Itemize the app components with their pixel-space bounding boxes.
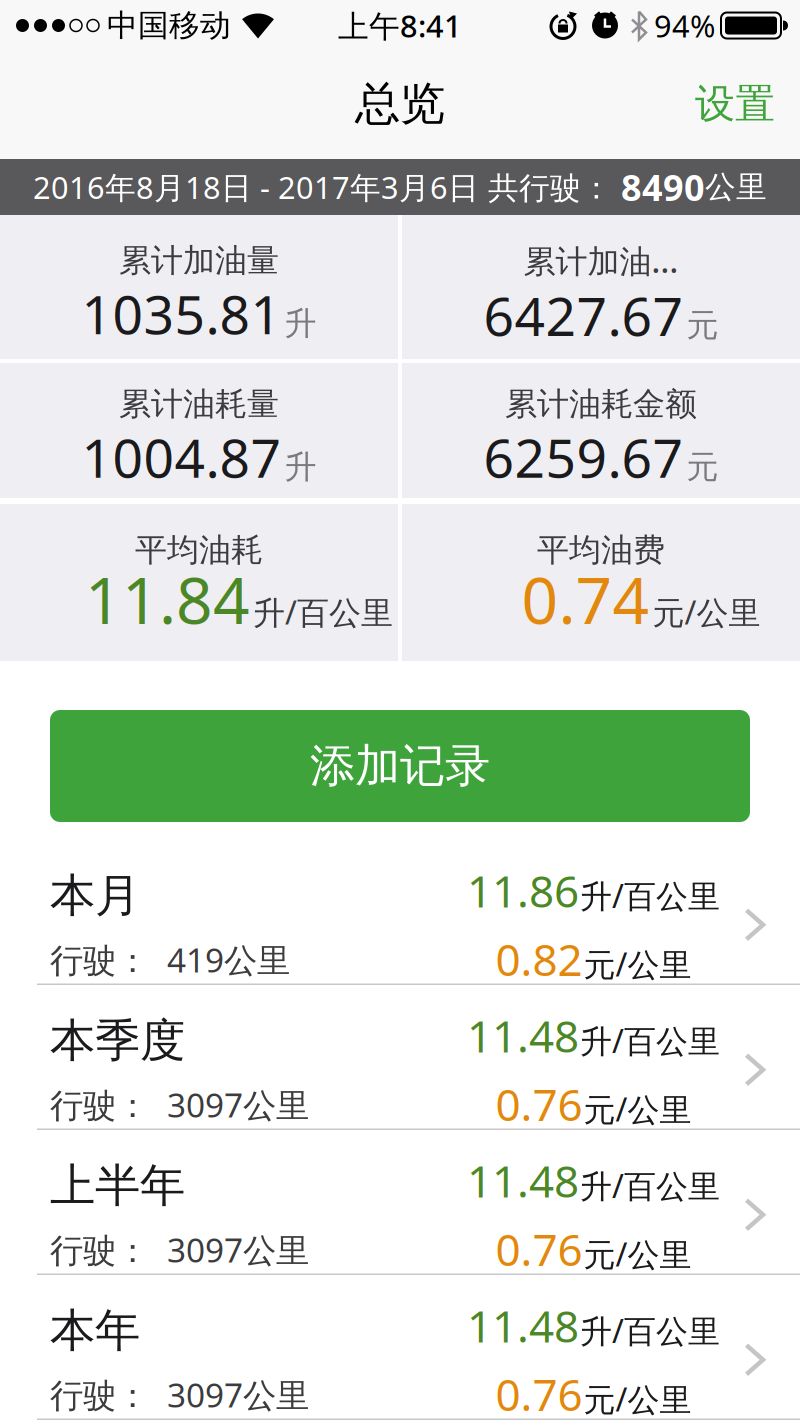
staticText: 上半年: [50, 1158, 185, 1213]
staticText: 升/百公里: [580, 1309, 720, 1352]
staticText: 本年: [50, 1303, 140, 1358]
staticText: 11.84: [85, 557, 250, 642]
button[interactable]: 添加记录: [50, 710, 750, 822]
staticText: 11.48: [467, 1006, 579, 1065]
staticText: 6259.67: [483, 422, 683, 492]
staticText: 设置: [695, 79, 775, 128]
staticText: 0.76: [495, 1075, 582, 1133]
button[interactable]: 本年: [0, 1275, 800, 1420]
staticText: 元: [686, 447, 718, 487]
staticText: 行驶： 3097公里: [50, 1082, 309, 1127]
staticText: 6427.67: [483, 280, 683, 351]
staticText: 0.76: [495, 1365, 582, 1422]
staticText: 11.86: [467, 861, 579, 920]
staticText: 升/百公里: [580, 1019, 720, 1062]
staticText: 添加记录: [310, 738, 490, 794]
staticText: 2016年8月18日 - 2017年3月6日 共行驶：: [33, 167, 621, 207]
staticText: 元/公里: [583, 1088, 691, 1130]
staticText: 1035.81: [81, 278, 281, 349]
button[interactable]: 本季度: [0, 985, 800, 1130]
staticText: 8490: [621, 163, 705, 211]
staticText: 累计油耗量: [119, 384, 279, 424]
staticText: 总览: [355, 76, 445, 132]
staticText: 升: [284, 304, 316, 343]
staticText: 本月: [50, 868, 140, 923]
staticText: 行驶： 3097公里: [50, 1227, 309, 1272]
staticText: 0.74: [521, 557, 649, 642]
staticText: 平均油费: [537, 530, 665, 570]
staticText: 行驶： 419公里: [50, 937, 290, 982]
button[interactable]: 上半年: [0, 1130, 800, 1275]
staticText: 累计加油...: [523, 239, 678, 282]
staticText: 升: [284, 447, 316, 487]
staticText: 11.48: [467, 1296, 579, 1355]
button[interactable]: 本月: [0, 840, 800, 985]
staticText: 94%: [654, 5, 715, 46]
staticText: 升/百公里: [253, 591, 393, 633]
staticText: 累计加油量: [119, 241, 279, 280]
staticText: 累计油耗金额: [505, 384, 697, 424]
staticText: 0.82: [495, 930, 582, 988]
staticText: 行驶： 3097公里: [50, 1372, 309, 1417]
staticText: 上午8:41: [338, 5, 462, 46]
staticText: 元/公里: [583, 1233, 691, 1275]
staticText: 中国移动: [107, 7, 231, 44]
staticText: 升/百公里: [580, 1164, 720, 1207]
staticText: 11.48: [467, 1151, 579, 1210]
staticText: 元/公里: [583, 943, 691, 985]
staticText: 1004.87: [81, 422, 281, 492]
staticText: 元/公里: [583, 1378, 691, 1420]
button[interactable]: 设置: [695, 79, 775, 128]
staticText: 元/公里: [652, 591, 760, 633]
staticText: 平均油耗: [135, 530, 263, 570]
staticText: 升/百公里: [580, 874, 720, 917]
staticText: 元: [686, 306, 718, 345]
staticText: 本季度: [50, 1013, 185, 1068]
staticText: 0.76: [495, 1220, 582, 1278]
staticText: 公里: [705, 168, 767, 206]
